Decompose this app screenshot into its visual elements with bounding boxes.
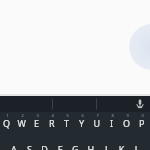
button[interactable]: F xyxy=(53,131,68,150)
button[interactable]: R xyxy=(45,112,60,131)
button[interactable]: G xyxy=(68,131,83,150)
button[interactable]: Q xyxy=(0,112,15,131)
button[interactable]: Suggestion 2 xyxy=(52,96,104,112)
button[interactable]: S xyxy=(22,131,37,150)
button[interactable]: K xyxy=(114,131,129,150)
button[interactable]: Y xyxy=(75,112,90,131)
button[interactable]: Voice input xyxy=(132,96,150,112)
button[interactable]: J xyxy=(99,131,114,150)
button[interactable]: W xyxy=(15,112,30,131)
button[interactable]: U xyxy=(90,112,105,131)
button[interactable]: T xyxy=(60,112,75,131)
button[interactable]: O xyxy=(120,112,135,131)
button[interactable]: L xyxy=(130,131,145,150)
button[interactable]: H xyxy=(84,131,99,150)
button[interactable]: E xyxy=(30,112,45,131)
button[interactable]: P xyxy=(135,112,150,131)
button[interactable]: A xyxy=(7,131,22,150)
button[interactable]: Suggestion 3 xyxy=(96,96,132,112)
button[interactable]: I xyxy=(105,112,120,131)
button[interactable]: D xyxy=(37,131,52,150)
